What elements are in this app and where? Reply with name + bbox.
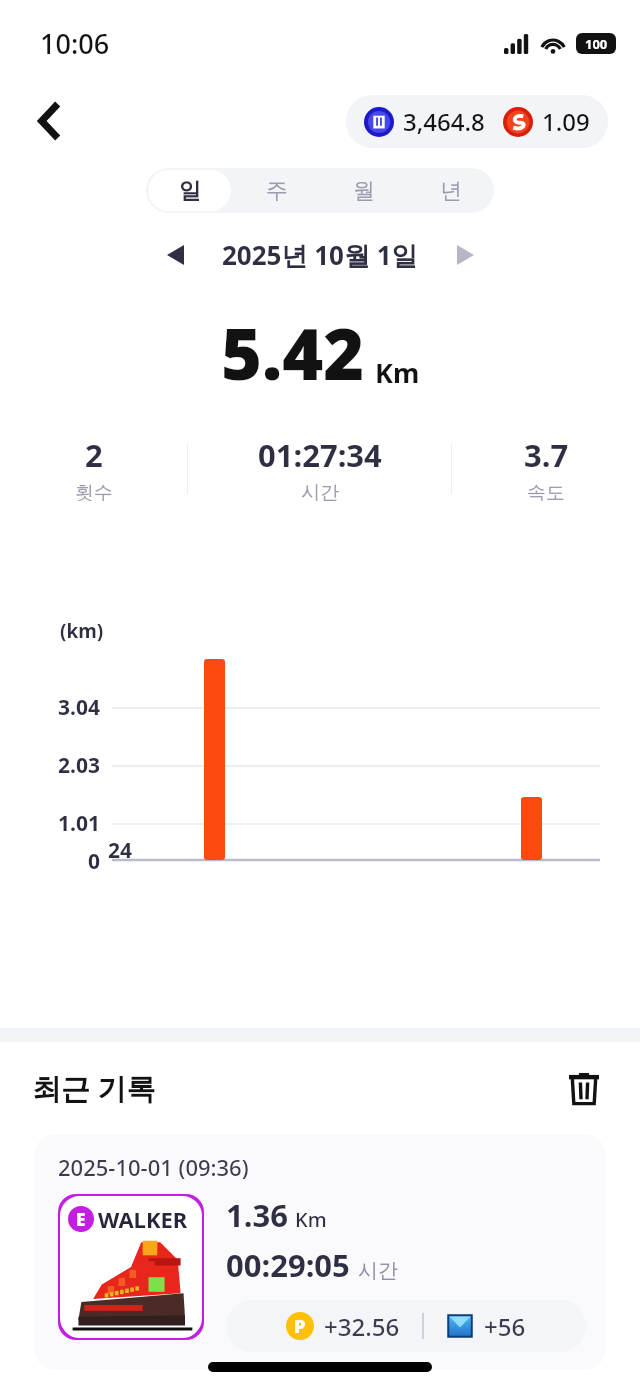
button[interactable]: 01:27:34 [188,432,451,506]
staticText: 월 [353,177,375,205]
staticText: 2025-10-01 (09:36) [58,1152,249,1182]
staticText: 0 [0,847,100,876]
staticText: 5.42 [221,305,365,400]
staticText: 횟수 [75,481,113,505]
staticText: 2.03 [0,751,100,780]
button[interactable]: 월 [322,170,405,211]
button[interactable]: Next day [444,234,486,276]
staticText: 속도 [527,481,565,505]
staticText: 주 [266,177,288,205]
staticText: 시간 [301,481,339,505]
staticText: +32.56 [324,1310,400,1343]
staticText: WALKER [98,1204,188,1234]
button[interactable]: Previous day [154,234,196,276]
staticText: 24 [100,836,140,865]
staticText: 2 [85,434,103,476]
button[interactable]: Back [24,95,76,147]
staticText: 01:27:34 [258,434,382,476]
button[interactable]: P [226,1300,586,1352]
staticText: Km [295,1206,327,1233]
staticText: +56 [484,1310,526,1343]
staticText: (km) [60,618,104,644]
button[interactable]: 2 [0,432,187,506]
button[interactable]: Delete records [558,1062,610,1114]
staticText: Km [375,354,420,391]
button[interactable]: E [58,1194,204,1340]
staticText: 00:29:05 [226,1244,350,1286]
staticText: 시간 [358,1258,398,1283]
button[interactable]: 일 [148,170,231,211]
staticText: 일 [179,177,201,205]
button[interactable]: 3,464.8 [346,95,608,148]
staticText: 10:06 [40,25,110,62]
staticText: 3.7 [524,434,569,476]
staticText: P [294,1314,306,1339]
staticText: E [76,1208,86,1231]
button[interactable]: 주 [235,170,318,211]
staticText: 3.04 [0,693,100,722]
staticText: 3,464.8 [403,105,485,138]
staticText: 년 [440,177,462,205]
button[interactable]: 3.7 [452,432,640,506]
staticText: 최근 기록 [32,1068,156,1108]
staticText: 1.36 [226,1194,288,1236]
staticText: 1.09 [542,105,590,138]
staticText: 2025년 10월 1일 [222,237,418,273]
button[interactable]: 2025-10-01 (09:36) [34,1134,606,1370]
staticText: 1.01 [0,809,100,838]
button[interactable]: 년 [409,170,492,211]
staticText: 100 [585,35,608,53]
